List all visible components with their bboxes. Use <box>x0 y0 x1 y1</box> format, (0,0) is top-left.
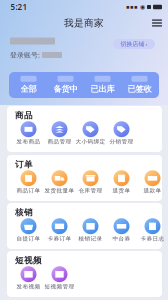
staticText: 已签收 <box>127 84 151 94</box>
staticText: 仓库管理 <box>78 187 102 194</box>
staticText: 卡券日志 <box>140 235 164 242</box>
button[interactable]: 发货批量单 <box>44 170 75 195</box>
staticText: 我是商家 <box>64 17 104 29</box>
staticText: 备货中 <box>53 84 77 94</box>
button[interactable]: 商品订单 <box>13 170 44 195</box>
button[interactable]: 发布视频 <box>13 266 44 291</box>
staticText: 短视频管理 <box>44 283 74 290</box>
button[interactable]: 大小码绑定 <box>75 121 106 146</box>
staticText: 退货单 <box>112 187 130 194</box>
staticText: 已出库 <box>90 84 114 94</box>
button[interactable]: 切换店铺 <box>113 39 155 49</box>
staticText: 发布商品 <box>16 138 40 145</box>
button[interactable]: Menu <box>148 15 166 31</box>
staticText: 核销记录 <box>78 235 102 242</box>
staticText: 5:21 <box>10 2 27 12</box>
button[interactable]: 仓库管理 <box>75 170 106 195</box>
staticText: 大小码绑定 <box>75 138 105 145</box>
staticText: 发货批量单 <box>44 187 74 194</box>
button[interactable]: 已签收 <box>121 72 158 98</box>
staticText: 商品管理 <box>47 138 71 145</box>
button[interactable]: 中台券 <box>106 218 137 243</box>
staticText: 登录账号: <box>10 50 40 60</box>
button[interactable]: 短视频管理 <box>44 266 75 291</box>
staticText: 商品 <box>15 110 33 121</box>
staticText: 自提订单 <box>16 235 40 242</box>
staticText: 发布视频 <box>16 283 40 290</box>
staticText: 中台券 <box>112 235 130 242</box>
button[interactable]: 核销记录 <box>75 218 106 243</box>
staticText: ◉ <box>140 3 145 10</box>
staticText: 切换店铺 <box>120 40 144 48</box>
button[interactable]: 退货单 <box>106 170 137 195</box>
staticText: 卡券订单 <box>47 235 71 242</box>
button[interactable]: 分销管理 <box>106 121 137 146</box>
button[interactable]: 自提订单 <box>13 218 44 243</box>
staticText: ▪▪▪ <box>126 4 138 10</box>
staticText: 分销管理 <box>109 138 133 145</box>
button[interactable]: 退款单 <box>137 170 168 195</box>
staticText: › <box>145 40 147 48</box>
button[interactable]: 商品管理 <box>44 121 75 146</box>
staticText: 退款单 <box>143 187 161 194</box>
button[interactable]: 已出库 <box>84 72 121 98</box>
staticText: 订单 <box>15 159 33 170</box>
button[interactable]: 备货中 <box>47 72 84 98</box>
staticText: 商品订单 <box>16 187 40 194</box>
staticText: 全部 <box>20 84 36 94</box>
button[interactable]: 全部 <box>10 72 47 98</box>
staticText: 核销 <box>15 207 33 218</box>
staticText: 短视频 <box>15 255 42 266</box>
button[interactable]: 发布商品 <box>13 121 44 146</box>
button[interactable]: 卡券订单 <box>44 218 75 243</box>
button[interactable]: 卡券日志 <box>137 218 168 243</box>
